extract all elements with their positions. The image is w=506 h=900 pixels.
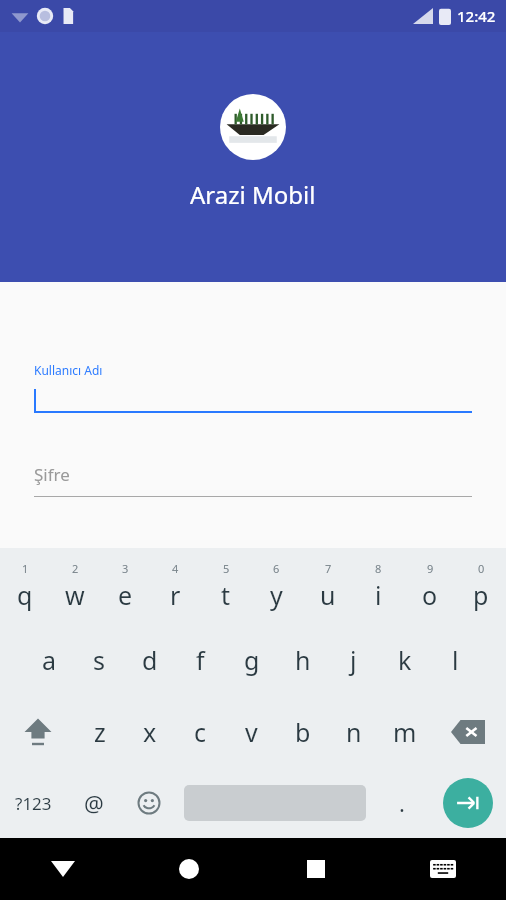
staticText: 6 (273, 561, 280, 576)
staticText: Arazi Mobil (190, 178, 316, 211)
staticText: Kullanıcı Adı (34, 362, 103, 378)
button[interactable]: @ (66, 768, 121, 838)
button[interactable]: Enter (429, 768, 506, 838)
staticText: u (320, 578, 336, 612)
staticText: v (245, 715, 258, 749)
button[interactable]: v (226, 696, 277, 768)
button[interactable]: Backspace (430, 696, 506, 768)
button[interactable]: s (74, 624, 124, 696)
staticText: i (375, 578, 382, 612)
staticText: b (295, 715, 311, 749)
staticText: 1 (22, 561, 29, 576)
button[interactable]: . (374, 768, 429, 838)
button[interactable]: c (175, 696, 226, 768)
button[interactable]: Home (126, 838, 252, 900)
staticText: 4 (172, 561, 179, 576)
button[interactable]: Şifre (34, 463, 472, 497)
button[interactable]: Space (176, 768, 374, 838)
button[interactable]: Hide keyboard (0, 838, 126, 900)
button[interactable]: 8 (353, 548, 404, 624)
staticText: ?123 (15, 792, 52, 815)
button[interactable]: x (125, 696, 175, 768)
button[interactable]: l (430, 624, 481, 696)
staticText: Şifre (34, 463, 70, 486)
staticText: 7 (325, 561, 332, 576)
button[interactable]: 6 (251, 548, 302, 624)
button[interactable]: h (277, 624, 328, 696)
button[interactable]: 5 (200, 548, 251, 624)
staticText: k (398, 643, 412, 677)
staticText: e (118, 578, 133, 612)
staticText: w (65, 578, 85, 612)
button[interactable]: a (24, 624, 74, 696)
staticText: p (473, 578, 489, 612)
button[interactable]: ?123 (0, 768, 66, 838)
button[interactable]: g (226, 624, 277, 696)
staticText: @ (84, 788, 104, 818)
button[interactable]: d (124, 624, 175, 696)
button[interactable]: Recents (252, 838, 379, 900)
staticText: 8 (375, 561, 382, 576)
staticText: c (194, 715, 207, 749)
staticText: y (270, 578, 283, 612)
button[interactable]: f (175, 624, 226, 696)
button[interactable]: 3 (100, 548, 150, 624)
staticText: m (393, 715, 417, 749)
button[interactable]: j (328, 624, 379, 696)
staticText: n (346, 715, 362, 749)
staticText: g (244, 643, 260, 677)
staticText: z (94, 715, 106, 749)
staticText: 12:42 (457, 6, 496, 26)
staticText: . (399, 788, 405, 818)
button[interactable]: b (277, 696, 328, 768)
button[interactable]: 9 (404, 548, 455, 624)
staticText: 0 (478, 561, 485, 576)
staticText: s (93, 643, 105, 677)
button[interactable]: 0 (455, 548, 506, 624)
button[interactable]: Switch keyboard (379, 838, 506, 900)
staticText: q (17, 578, 33, 612)
staticText: h (295, 643, 311, 677)
staticText: a (42, 643, 57, 677)
staticText: l (452, 643, 459, 677)
staticText: 9 (427, 561, 434, 576)
button[interactable]: Emoji (121, 768, 176, 838)
staticText: 5 (223, 561, 230, 576)
button[interactable]: 1 (0, 548, 50, 624)
button[interactable]: m (379, 696, 430, 768)
staticText: 2 (72, 561, 79, 576)
button[interactable]: Kullanıcı Adı (34, 362, 472, 413)
button[interactable]: 7 (302, 548, 353, 624)
staticText: o (422, 578, 438, 612)
staticText: r (170, 578, 181, 612)
staticText: t (221, 578, 231, 612)
button[interactable]: z (75, 696, 125, 768)
button[interactable]: Shift (0, 696, 75, 768)
staticText: f (196, 643, 205, 677)
staticText: 3 (122, 561, 129, 576)
button[interactable]: n (328, 696, 379, 768)
staticText: d (142, 643, 158, 677)
button[interactable]: k (379, 624, 430, 696)
button[interactable]: 4 (150, 548, 200, 624)
staticText: x (143, 715, 157, 749)
staticText: j (350, 643, 357, 677)
button[interactable]: 2 (50, 548, 100, 624)
